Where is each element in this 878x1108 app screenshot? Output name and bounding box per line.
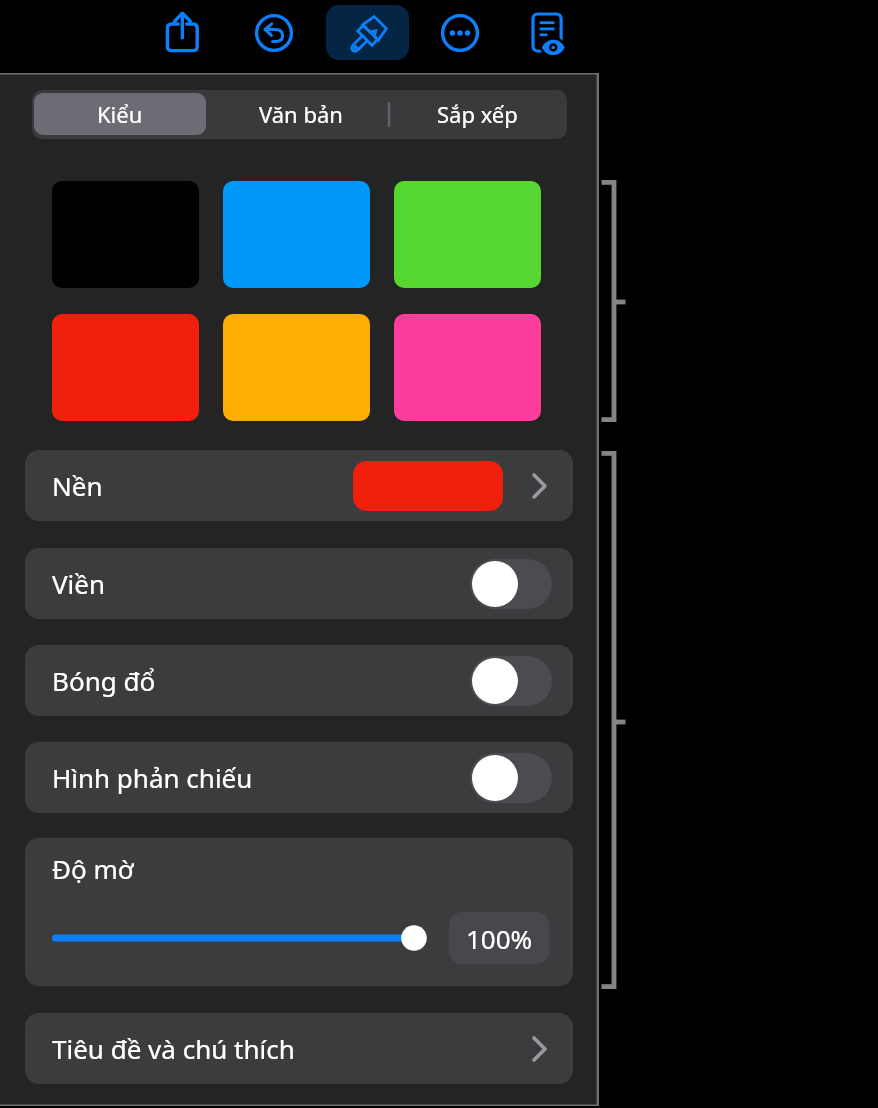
staticText: Độ mờ: [52, 851, 134, 884]
button[interactable]: [394, 181, 541, 288]
staticText: 100%: [466, 921, 533, 956]
button[interactable]: [223, 181, 370, 288]
staticText: Kiểu: [97, 99, 143, 129]
button[interactable]: [223, 314, 370, 421]
button[interactable]: Bóng đổ: [25, 645, 573, 716]
button[interactable]: Document: [520, 7, 572, 59]
button[interactable]: [52, 314, 199, 421]
button[interactable]: Hình phản chiếu: [25, 742, 573, 813]
button[interactable]: Nền: [25, 450, 573, 521]
button[interactable]: Viền: [25, 548, 573, 619]
button[interactable]: Văn bản: [213, 93, 389, 135]
button[interactable]: Sắp xếp: [390, 93, 565, 135]
button[interactable]: Tiêu đề và chú thích: [25, 1013, 573, 1084]
staticText: Sắp xếp: [437, 99, 518, 129]
button[interactable]: Format: [326, 5, 409, 60]
staticText: Tiêu đề và chú thích: [52, 1031, 295, 1066]
button[interactable]: Share: [157, 7, 209, 59]
staticText: Viền: [52, 566, 106, 601]
staticText: Văn bản: [259, 99, 343, 129]
button[interactable]: [394, 314, 541, 421]
staticText: Hình phản chiếu: [52, 760, 253, 795]
button[interactable]: Undo: [248, 7, 300, 59]
staticText: Bóng đổ: [52, 663, 156, 698]
button[interactable]: Độ mờ: [25, 838, 573, 986]
button[interactable]: Kiểu: [34, 93, 206, 135]
staticText: Nền: [52, 468, 103, 503]
button[interactable]: More: [434, 7, 486, 59]
